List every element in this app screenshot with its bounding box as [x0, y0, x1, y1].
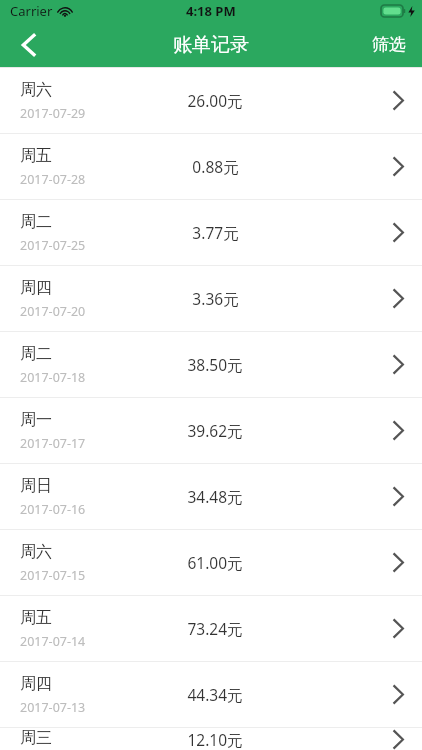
staticText: 周五	[20, 608, 52, 628]
button[interactable]: 周三	[0, 728, 422, 750]
staticText: 34.48元	[187, 486, 243, 507]
button[interactable]: 周一	[0, 398, 422, 463]
staticText: 2017-07-17	[20, 435, 86, 452]
staticText: 26.00元	[187, 90, 243, 111]
staticText: Carrier	[10, 2, 53, 20]
button[interactable]: 周四	[0, 266, 422, 331]
button[interactable]: 筛选	[372, 22, 406, 67]
button[interactable]: 周日	[0, 464, 422, 529]
staticText: 周六	[20, 80, 52, 100]
staticText: 12.10元	[187, 729, 243, 750]
staticText: 2017-07-18	[20, 369, 86, 386]
staticText: 周三	[20, 728, 52, 748]
staticText: 2017-07-15	[20, 567, 86, 584]
staticText: 2017-07-28	[20, 171, 86, 188]
staticText: 周一	[20, 410, 52, 430]
button[interactable]: 周四	[0, 662, 422, 727]
button[interactable]: 周二	[0, 332, 422, 397]
staticText: 周二	[20, 344, 52, 364]
staticText: 39.62元	[187, 420, 243, 441]
staticText: 周四	[20, 278, 52, 298]
staticText: 0.88元	[192, 156, 239, 177]
staticText: 2017-07-16	[20, 501, 86, 518]
staticText: 2017-07-25	[20, 237, 86, 254]
staticText: 账单记录	[173, 33, 249, 57]
button[interactable]: Back	[0, 22, 56, 67]
staticText: 2017-07-29	[20, 105, 86, 122]
staticText: 2017-07-14	[20, 633, 86, 650]
button[interactable]: 周六	[0, 68, 422, 133]
staticText: 周日	[20, 476, 52, 496]
staticText: 44.34元	[187, 684, 243, 705]
staticText: 38.50元	[187, 354, 243, 375]
staticText: 周五	[20, 146, 52, 166]
staticText: 4:18 PM	[186, 2, 236, 20]
button[interactable]: 周五	[0, 596, 422, 661]
staticText: 73.24元	[187, 618, 243, 639]
staticText: 2017-07-13	[20, 699, 86, 716]
staticText: 筛选	[372, 34, 406, 55]
staticText: 周四	[20, 674, 52, 694]
staticText: 3.36元	[192, 288, 239, 309]
button[interactable]: 周六	[0, 530, 422, 595]
staticText: 3.77元	[192, 222, 239, 243]
staticText: 61.00元	[187, 552, 243, 573]
button[interactable]: 周二	[0, 200, 422, 265]
staticText: 周六	[20, 542, 52, 562]
button[interactable]: 周五	[0, 134, 422, 199]
staticText: 周二	[20, 212, 52, 232]
staticText: 2017-07-20	[20, 303, 86, 320]
